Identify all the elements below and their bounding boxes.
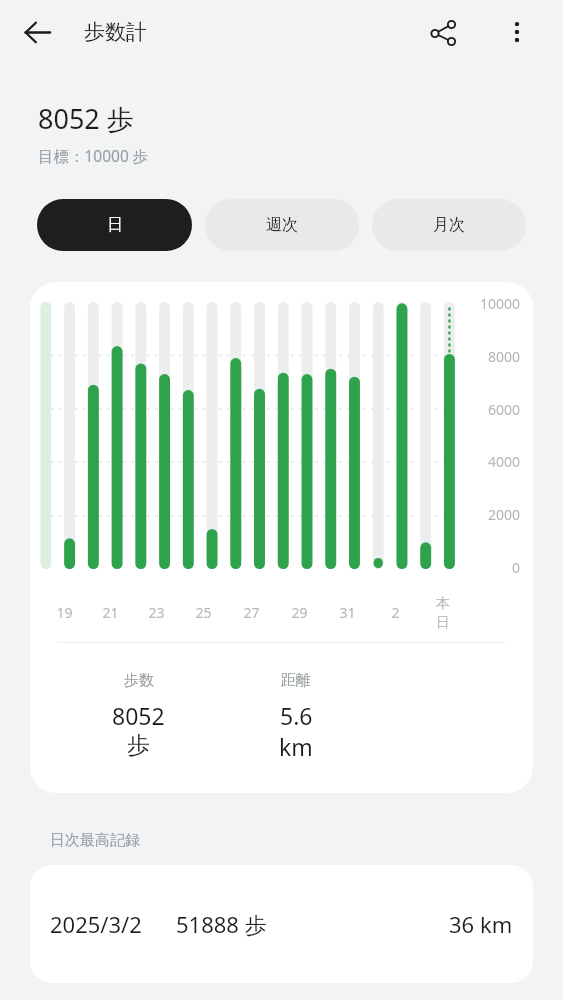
staticText: 36 km <box>449 909 513 939</box>
staticText: 月次 <box>433 215 465 235</box>
button[interactable]: More options <box>492 7 542 57</box>
staticText: 29 <box>291 603 308 622</box>
staticText: 2025/3/2 <box>50 909 142 939</box>
staticText: 週次 <box>266 215 298 235</box>
staticText: 2000 <box>488 505 521 524</box>
staticText: 51888 歩 <box>176 909 267 939</box>
button[interactable]: 10000 <box>30 282 533 793</box>
staticText: 歩 <box>127 731 150 760</box>
staticText: 目標：10000 歩 <box>38 145 149 166</box>
staticText: km <box>279 731 313 762</box>
staticText: 本日 <box>431 595 455 629</box>
staticText: 8000 <box>488 347 521 366</box>
staticText: 2 <box>391 603 400 622</box>
staticText: 距離 <box>281 671 311 690</box>
staticText: 歩数 <box>124 671 154 690</box>
staticText: 19 <box>56 603 73 622</box>
staticText: 8052 歩 <box>38 100 134 137</box>
staticText: 23 <box>148 603 165 622</box>
staticText: 日次最高記録 <box>50 831 140 850</box>
staticText: 10000 <box>480 294 521 313</box>
staticText: 21 <box>102 603 119 622</box>
staticText: 8052 <box>112 700 165 731</box>
staticText: 4000 <box>488 452 521 471</box>
staticText: 31 <box>339 603 356 622</box>
staticText: 6000 <box>488 400 521 419</box>
staticText: 5.6 <box>280 700 313 731</box>
button[interactable]: 週次 <box>205 199 359 251</box>
button[interactable]: Back <box>12 7 62 57</box>
staticText: 25 <box>195 603 212 622</box>
staticText: 日 <box>107 215 123 235</box>
button[interactable]: 2025/3/2 <box>30 865 533 983</box>
button[interactable]: Share <box>418 7 468 57</box>
staticText: 27 <box>243 603 260 622</box>
button[interactable]: 月次 <box>372 199 526 251</box>
staticText: 歩数計 <box>84 19 147 45</box>
button[interactable]: 日 <box>37 199 192 251</box>
staticText: 0 <box>512 558 521 577</box>
